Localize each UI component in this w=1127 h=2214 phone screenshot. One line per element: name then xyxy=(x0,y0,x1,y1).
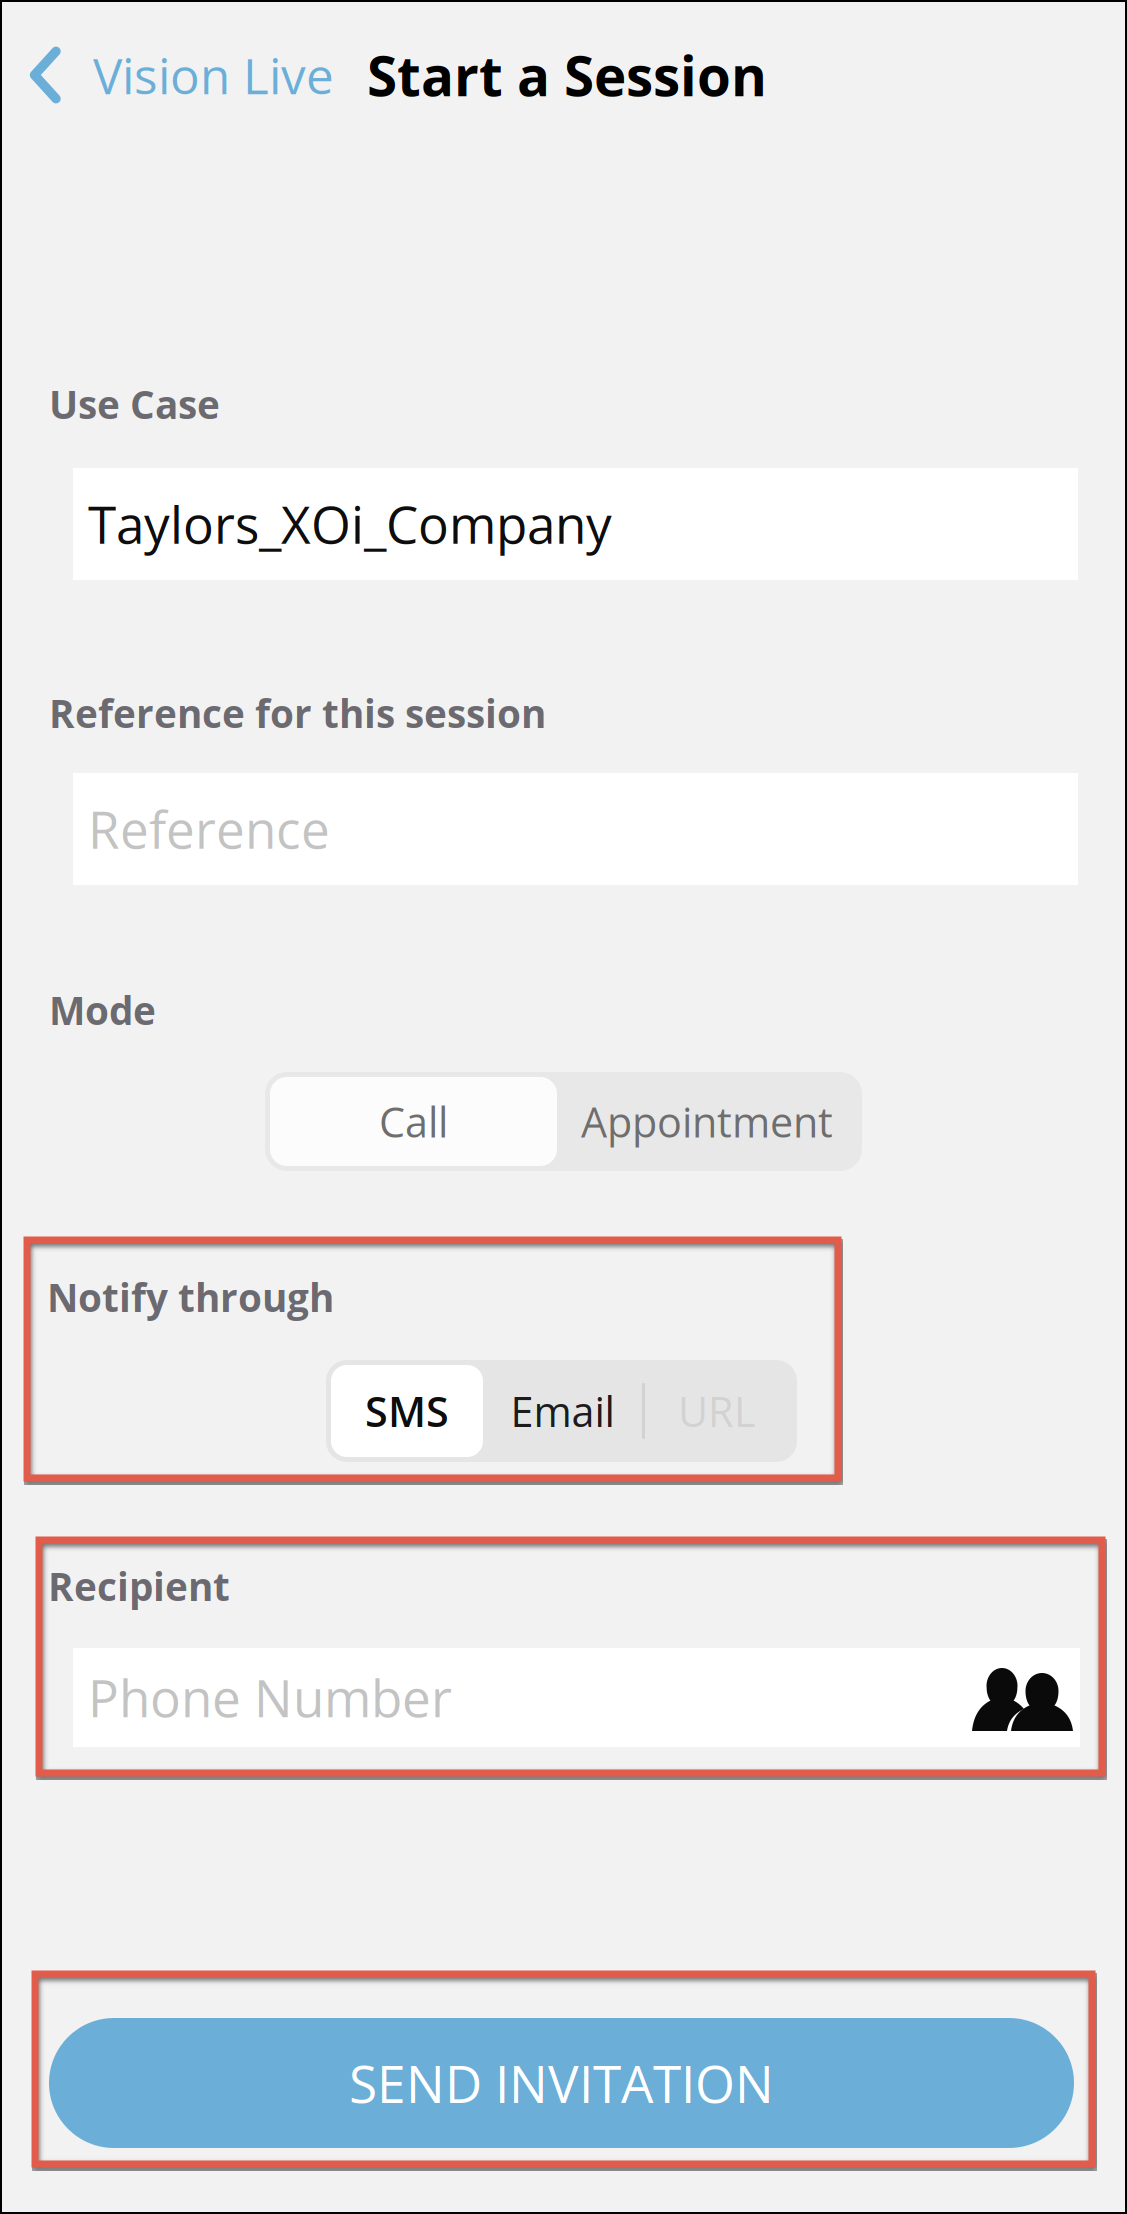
button[interactable]: SMS xyxy=(331,1365,483,1457)
staticText: Call xyxy=(379,1093,448,1150)
staticText: Phone Number xyxy=(88,1663,452,1732)
staticText: Reference for this session xyxy=(49,687,546,739)
button[interactable]: URL xyxy=(642,1365,792,1457)
staticText: URL xyxy=(678,1383,756,1439)
staticText: Email xyxy=(510,1383,614,1439)
staticText: Reference xyxy=(88,794,330,864)
button[interactable]: Choose from contacts xyxy=(972,1664,1080,1731)
button[interactable]: Appointment xyxy=(557,1077,857,1166)
staticText: Vision Live xyxy=(93,41,334,109)
button[interactable]: Back to Vision Live xyxy=(0,0,344,150)
staticText: Taylors_XOi_Company xyxy=(88,489,612,559)
staticText: Recipient xyxy=(48,1560,230,1612)
staticText: Use Case xyxy=(49,378,220,430)
staticText: Mode xyxy=(49,984,156,1036)
staticText: Notify through xyxy=(47,1271,334,1323)
button[interactable]: Email xyxy=(483,1365,642,1457)
staticText: SEND INVITATION xyxy=(349,2048,774,2118)
staticText: SMS xyxy=(365,1383,449,1439)
staticText: Start a Session xyxy=(367,38,767,112)
button[interactable]: SEND INVITATION xyxy=(35,1974,1092,2164)
staticText: Appointment xyxy=(581,1093,833,1150)
button[interactable]: Call xyxy=(270,1077,557,1166)
